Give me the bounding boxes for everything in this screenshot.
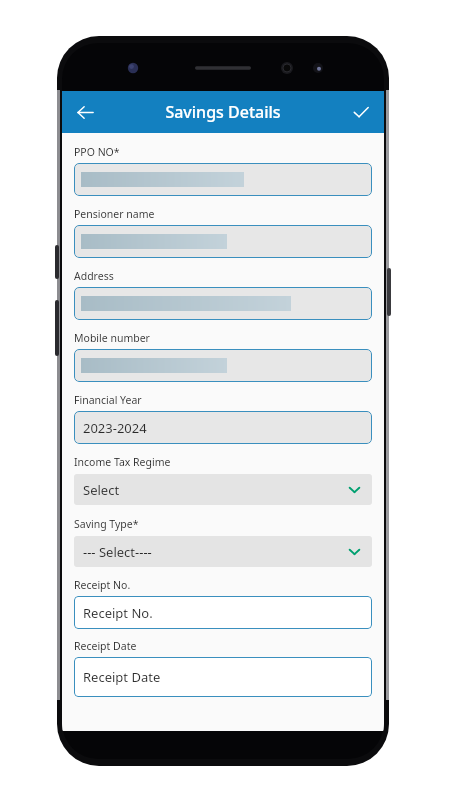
staticText: 2023-2024 <box>83 419 147 437</box>
button[interactable]: Receipt Date <box>74 657 372 697</box>
button[interactable] <box>74 287 372 320</box>
staticText: PPO NO* <box>74 145 120 159</box>
button[interactable]: Save <box>344 95 378 129</box>
staticText: Receipt No. <box>74 578 131 592</box>
staticText: Address <box>74 269 114 283</box>
button[interactable]: --- Select---- <box>74 536 372 567</box>
staticText: Pensioner name <box>74 207 155 221</box>
staticText: Savings Details <box>165 101 281 123</box>
staticText: Receipt No. <box>83 604 153 622</box>
button[interactable]: Select <box>74 474 372 505</box>
staticText: Receipt Date <box>74 639 137 653</box>
button[interactable]: Receipt No. <box>74 596 372 629</box>
button[interactable] <box>74 163 372 196</box>
staticText: Mobile number <box>74 331 150 345</box>
button[interactable]: Back <box>68 95 102 129</box>
staticText: Select <box>83 481 120 499</box>
staticText: --- Select---- <box>83 543 152 561</box>
staticText: Income Tax Regime <box>74 455 171 469</box>
staticText: Saving Type* <box>74 517 139 531</box>
button[interactable] <box>74 349 372 382</box>
button[interactable]: 2023-2024 <box>74 411 372 444</box>
button[interactable] <box>74 225 372 258</box>
staticText: Financial Year <box>74 393 142 407</box>
staticText: Receipt Date <box>83 668 161 686</box>
